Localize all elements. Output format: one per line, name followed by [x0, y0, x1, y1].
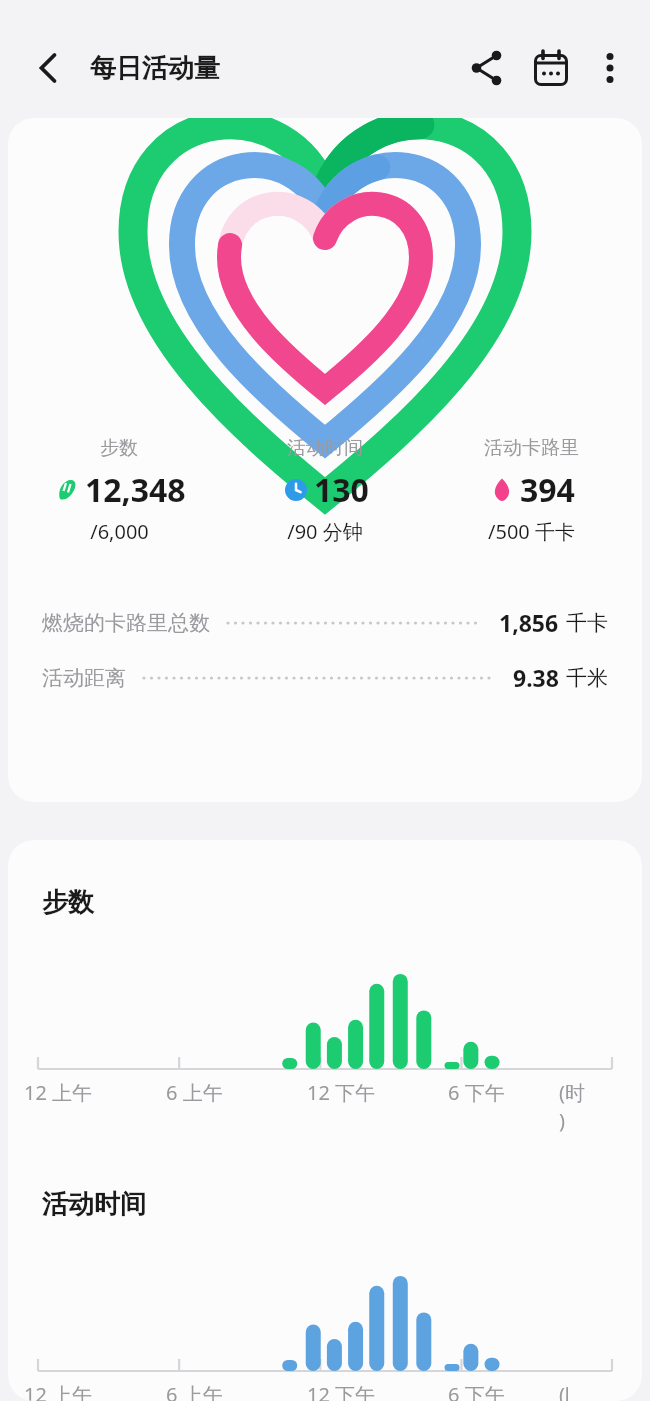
- staticText: 1,856: [499, 607, 559, 638]
- staticText: 12 下午: [307, 1079, 376, 1106]
- button[interactable]: 活动时间: [222, 436, 428, 545]
- staticText: 活动时间: [287, 436, 363, 460]
- staticText: 燃烧的卡路里总数: [42, 610, 210, 636]
- staticText: 12 上午: [24, 1079, 93, 1106]
- button[interactable]: Share: [460, 41, 514, 95]
- staticText: 活动距离: [42, 665, 126, 691]
- staticText: (时): [559, 1079, 568, 1134]
- staticText: 12 上午: [24, 1381, 93, 1401]
- staticText: 千卡: [566, 610, 608, 636]
- staticText: /500 千卡: [488, 518, 575, 545]
- staticText: 6 上午: [166, 1381, 223, 1401]
- staticText: 步数: [42, 886, 94, 919]
- button[interactable]: 燃烧的卡路里总数: [8, 607, 642, 638]
- staticText: 千米: [566, 665, 608, 691]
- staticText: 步数: [100, 436, 138, 460]
- staticText: 活动卡路里: [484, 436, 579, 460]
- button[interactable]: 活动卡路里: [428, 436, 634, 545]
- staticText: 12,348: [85, 468, 186, 512]
- staticText: 9.38: [513, 662, 559, 693]
- staticText: 12 下午: [307, 1381, 376, 1401]
- staticText: 活动时间: [42, 1188, 146, 1221]
- staticText: 394: [520, 468, 575, 512]
- staticText: 6 下午: [448, 1079, 505, 1106]
- staticText: 每日活动量: [90, 52, 220, 85]
- staticText: /6,000: [90, 518, 149, 545]
- staticText: /90 分钟: [287, 518, 363, 545]
- button[interactable]: 步数: [16, 436, 222, 545]
- button[interactable]: Back: [24, 44, 72, 92]
- button[interactable]: 活动距离: [8, 662, 642, 693]
- staticText: 130: [314, 468, 369, 512]
- button[interactable]: More options: [586, 44, 634, 92]
- staticText: 6 下午: [448, 1381, 505, 1401]
- button[interactable]: Calendar: [524, 41, 578, 95]
- staticText: (时): [559, 1381, 568, 1401]
- staticText: 6 上午: [166, 1079, 223, 1106]
